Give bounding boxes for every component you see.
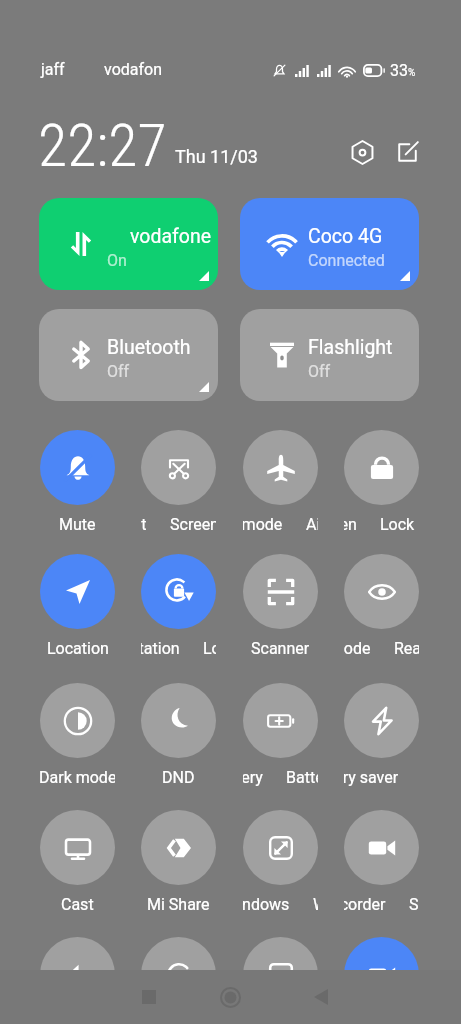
staticText: Mute <box>40 515 77 534</box>
staticText: vodafone <box>130 225 212 248</box>
staticText: DND <box>141 768 174 787</box>
button[interactable]: Location <box>40 554 115 629</box>
button[interactable]: Bluetooth <box>39 309 218 401</box>
button[interactable]: Settings <box>347 137 377 167</box>
button[interactable]: Dark mode <box>40 683 115 758</box>
button[interactable]: Airplane mode <box>243 430 318 505</box>
staticText: Coco 4G <box>308 225 383 248</box>
button[interactable]: vodafone <box>39 198 218 290</box>
button[interactable]: Lock rotation <box>141 554 216 629</box>
staticText: DND <box>162 768 195 787</box>
button[interactable]: Lock screen <box>344 430 419 505</box>
button[interactable]: Cast <box>40 810 115 885</box>
staticText: Battery <box>243 768 263 787</box>
staticText: Airplane mode <box>243 515 283 534</box>
button[interactable]: Mute <box>40 430 115 505</box>
staticText: Reading mode <box>394 639 419 658</box>
staticText: Mi Share <box>141 895 204 914</box>
staticText: Mi Share <box>147 895 210 914</box>
button[interactable]: Battery <box>243 683 318 758</box>
staticText: Flashlight <box>308 336 393 359</box>
staticText: vodafon <box>104 60 163 79</box>
staticText: Scanner <box>251 639 310 658</box>
staticText: Off <box>107 362 130 381</box>
staticText: Cast <box>61 895 94 914</box>
button[interactable] <box>243 937 318 1012</box>
staticText: Reading mode <box>344 639 371 658</box>
staticText: Screen recorder <box>344 895 386 914</box>
staticText: Airplane mode <box>306 515 318 534</box>
staticText: Windows <box>313 895 318 914</box>
staticText: Screen recorder <box>409 895 419 914</box>
staticText: % <box>408 67 416 79</box>
staticText: Mute <box>59 515 96 534</box>
button[interactable]: Screenshot <box>141 430 216 505</box>
button[interactable] <box>141 937 216 1012</box>
staticText: Screenshot <box>170 515 216 534</box>
button[interactable]: Scanner <box>243 554 318 629</box>
staticText: Battery <box>286 768 318 787</box>
staticText: Cast <box>40 895 73 914</box>
staticText: Connected <box>308 251 385 270</box>
staticText: Screenshot <box>141 515 147 534</box>
button[interactable]: Flashlight <box>240 309 419 401</box>
button[interactable]: Windows <box>243 810 318 885</box>
button[interactable]: Edit <box>392 137 422 167</box>
button[interactable] <box>40 937 115 1012</box>
staticText: Windows <box>243 895 290 914</box>
button[interactable]: Reading mode <box>344 554 419 629</box>
staticText: Bluetooth <box>107 336 191 359</box>
staticText: On <box>107 251 127 270</box>
staticText: jaff <box>41 60 65 79</box>
staticText: Scanner <box>243 639 302 658</box>
staticText: Lock screen <box>380 515 419 534</box>
button[interactable]: Recents <box>125 970 173 1024</box>
button[interactable]: DND <box>141 683 216 758</box>
staticText: Lock rotation <box>141 639 180 658</box>
staticText: Lock screen <box>344 515 357 534</box>
staticText: Location <box>40 639 102 658</box>
staticText: 33 <box>390 61 408 80</box>
staticText: Location <box>47 639 109 658</box>
button[interactable] <box>344 937 419 1012</box>
button[interactable]: Mi Share <box>141 810 216 885</box>
button[interactable]: Coco 4G <box>240 198 419 290</box>
button[interactable]: Battery saver <box>344 683 419 758</box>
button[interactable]: Home <box>206 970 254 1024</box>
staticText: Thu 11/03 <box>175 146 258 167</box>
staticText: Off <box>308 362 331 381</box>
staticText: Dark mode <box>40 768 115 787</box>
staticText: 22:27 <box>38 110 167 180</box>
staticText: Dark mode <box>40 768 115 787</box>
button[interactable]: Screen recorder <box>344 810 419 885</box>
staticText: Battery saver <box>344 768 399 787</box>
staticText: Lock rotation <box>203 639 216 658</box>
